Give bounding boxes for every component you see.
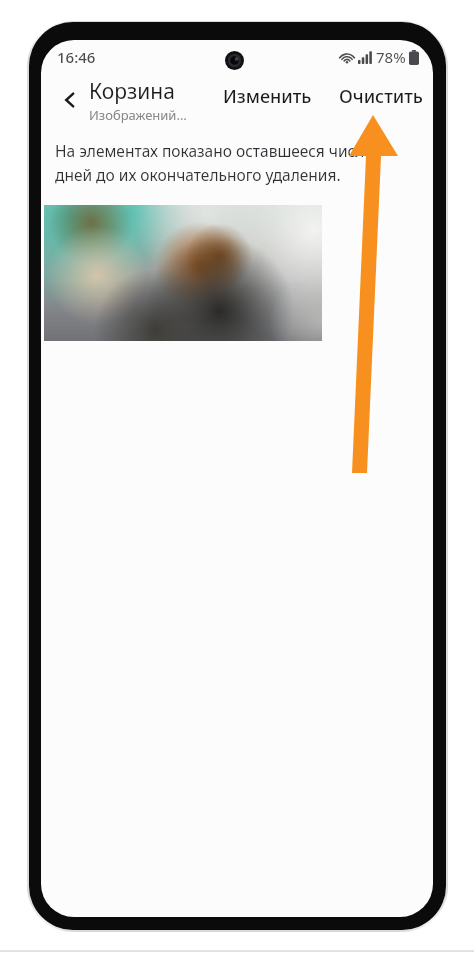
staticText: На элементах показано оставшееся число	[55, 140, 374, 161]
staticText: Очистить	[339, 84, 423, 109]
button[interactable]: Корзина	[89, 77, 217, 124]
staticText: дней до их окончательного удаления.	[55, 164, 341, 185]
button[interactable]: Изменить	[223, 84, 312, 109]
staticText: Корзина	[89, 77, 175, 106]
button[interactable]	[44, 205, 322, 341]
staticText: Изображений…	[89, 106, 187, 124]
staticText: 16:46	[57, 47, 96, 67]
button[interactable]: Очистить	[339, 84, 423, 109]
staticText: 78%	[376, 47, 406, 67]
staticText: Изменить	[223, 84, 312, 109]
button[interactable]: Назад	[51, 81, 89, 119]
